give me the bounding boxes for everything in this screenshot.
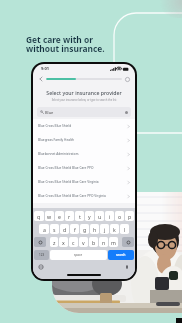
button[interactable]: Blue xyxy=(37,107,131,117)
staticText: e xyxy=(58,213,61,220)
staticText: u xyxy=(98,213,102,220)
staticText: b xyxy=(92,239,96,246)
staticText: p xyxy=(128,213,132,220)
button[interactable]: f xyxy=(70,224,79,234)
staticText: c xyxy=(72,239,75,246)
staticText: w xyxy=(47,213,52,220)
button[interactable]: o xyxy=(115,211,124,221)
staticText: Blue Cross Blue Shield Blue Care PPO xyxy=(38,166,94,170)
staticText: o xyxy=(118,213,122,220)
button[interactable]: y xyxy=(85,211,94,221)
staticText: d xyxy=(63,226,67,233)
button[interactable]: g xyxy=(80,224,89,234)
button[interactable]: 123 xyxy=(34,250,49,260)
button[interactable]: l xyxy=(120,224,129,234)
button[interactable]: search xyxy=(108,250,134,260)
button[interactable]: s xyxy=(50,224,59,234)
staticText: Select your insurance below, or type to … xyxy=(33,98,135,102)
button[interactable]: Back xyxy=(38,76,44,82)
button[interactable]: n xyxy=(99,237,108,247)
button[interactable]: Help xyxy=(124,76,130,82)
button[interactable]: a xyxy=(39,224,49,234)
button[interactable]: v xyxy=(79,237,88,247)
staticText: i xyxy=(109,213,111,220)
staticText: t xyxy=(79,213,81,220)
button[interactable]: w xyxy=(45,211,54,221)
button[interactable]: q xyxy=(34,211,44,221)
staticText: h xyxy=(93,226,97,233)
button[interactable]: Blue Cross Blue Shield Blue Care PPO Vir… xyxy=(33,189,135,203)
button[interactable]: k xyxy=(110,224,119,234)
button[interactable]: Backspace xyxy=(122,237,134,247)
staticText: r xyxy=(68,213,71,220)
staticText: Get care with or without insurance. xyxy=(26,34,105,54)
staticText: m xyxy=(111,239,116,246)
staticText: l xyxy=(124,226,126,233)
button[interactable]: b xyxy=(89,237,98,247)
staticText: a xyxy=(43,226,46,233)
button[interactable]: e xyxy=(55,211,64,221)
button[interactable]: m xyxy=(109,237,118,247)
staticText: y xyxy=(88,213,91,220)
staticText: space xyxy=(74,253,83,257)
staticText: g xyxy=(83,226,87,233)
button[interactable]: space xyxy=(50,250,107,260)
staticText: Bluegrass Family Health xyxy=(38,138,74,142)
staticText: search xyxy=(116,253,126,257)
staticText: Blue xyxy=(45,110,54,115)
button[interactable]: Blue Cross Blue Shield xyxy=(33,119,135,133)
staticText: v xyxy=(82,239,85,246)
staticText: Select your insurance provider xyxy=(33,89,135,96)
button[interactable]: p xyxy=(125,211,134,221)
staticText: Bluebonnet Administrators xyxy=(38,152,79,156)
staticText: x xyxy=(62,239,65,246)
staticText: q xyxy=(37,213,41,220)
button[interactable]: Shift xyxy=(34,237,46,247)
staticText: 9:01 xyxy=(41,66,49,71)
button[interactable]: j xyxy=(100,224,109,234)
button[interactable]: r xyxy=(65,211,74,221)
button[interactable]: c xyxy=(69,237,78,247)
button[interactable]: Bluegrass Family Health xyxy=(33,133,135,147)
button[interactable]: i xyxy=(105,211,114,221)
button[interactable]: u xyxy=(95,211,104,221)
staticText: 123 xyxy=(39,253,45,257)
button[interactable]: Bluebonnet Administrators xyxy=(33,147,135,161)
staticText: n xyxy=(102,239,106,246)
staticText: z xyxy=(53,239,56,246)
button[interactable]: Blue Cross Blue Shield Blue Care PPO xyxy=(33,161,135,175)
button[interactable]: x xyxy=(59,237,68,247)
staticText: f xyxy=(74,226,76,233)
staticText: s xyxy=(53,226,56,233)
staticText: j xyxy=(104,226,106,233)
button[interactable]: h xyxy=(90,224,99,234)
staticText: Blue Cross Blue Shield Blue Care Virgini… xyxy=(38,180,99,184)
staticText: Blue Cross Blue Shield Blue Care PPO Vir… xyxy=(38,194,106,198)
button[interactable]: Blue Cross Blue Shield Blue Care Virgini… xyxy=(33,175,135,189)
button[interactable]: t xyxy=(75,211,84,221)
button[interactable]: d xyxy=(60,224,69,234)
button[interactable]: z xyxy=(50,237,58,247)
staticText: Blue Cross Blue Shield xyxy=(38,124,72,128)
button[interactable]: Dictate xyxy=(124,264,130,270)
staticText: k xyxy=(113,226,116,233)
button[interactable]: Change keyboard xyxy=(38,264,44,270)
